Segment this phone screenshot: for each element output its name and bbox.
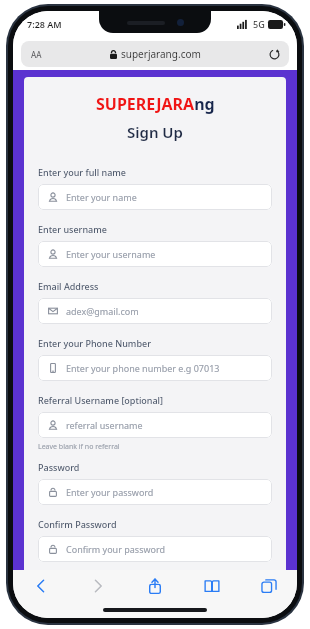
staticText: Enter your username xyxy=(66,248,156,260)
staticText: 5G xyxy=(253,18,265,30)
staticText: Leave blank if no referral xyxy=(38,442,120,452)
button[interactable]: Enter your phone number e.g 07013 xyxy=(38,355,272,381)
staticText: Sign Up xyxy=(127,122,183,142)
staticText: 7:28 AM xyxy=(27,18,62,30)
staticText: Confirm your password xyxy=(66,543,166,555)
button[interactable]: Bookmarks xyxy=(198,572,226,600)
staticText: superjarang.com xyxy=(121,47,201,61)
staticText: Referral Username [optional] xyxy=(38,394,164,406)
button[interactable]: Share xyxy=(141,572,169,600)
button[interactable]: Back xyxy=(27,572,55,600)
staticText: SUPEREJARAng xyxy=(96,93,215,115)
staticText: Email Address xyxy=(38,280,99,292)
staticText: Enter your Phone Number xyxy=(38,337,151,349)
button[interactable]: Enter your username xyxy=(38,241,272,267)
staticText: Enter your phone number e.g 07013 xyxy=(66,362,220,374)
staticText: Confirm Password xyxy=(38,518,117,530)
button[interactable]: Enter your name xyxy=(38,184,272,210)
staticText: Enter your name xyxy=(66,191,137,203)
staticText: referral username xyxy=(66,419,143,431)
button[interactable]: Confirm your password xyxy=(38,536,272,562)
button[interactable]: Forward xyxy=(84,572,112,600)
staticText: Password xyxy=(38,461,80,473)
button[interactable]: referral username xyxy=(38,412,272,438)
button[interactable]: adex@gmail.com xyxy=(38,298,272,324)
button[interactable]: AA xyxy=(21,41,289,67)
button[interactable]: Enter your password xyxy=(38,479,272,505)
button[interactable]: Reload xyxy=(267,47,281,61)
staticText: Enter your password xyxy=(66,486,154,498)
staticText: Enter username xyxy=(38,223,107,235)
staticText: adex@gmail.com xyxy=(66,305,139,317)
button[interactable]: Tabs xyxy=(255,572,283,600)
staticText: AA xyxy=(31,49,42,60)
staticText: Enter your full name xyxy=(38,166,126,178)
